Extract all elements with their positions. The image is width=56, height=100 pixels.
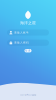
button[interactable]: 请输入账号 <box>7 29 49 36</box>
staticText: 请输入密码 <box>14 41 29 44</box>
staticText: Copyright © 2024 版权所有 <box>20 94 36 96</box>
button[interactable]: 登录 <box>24 49 31 52</box>
button[interactable]: 请输入密码 <box>7 40 49 46</box>
staticText: 登录 <box>25 49 31 52</box>
staticText: 海洋之星 <box>20 20 36 25</box>
staticText: 请输入账号 <box>14 31 29 34</box>
